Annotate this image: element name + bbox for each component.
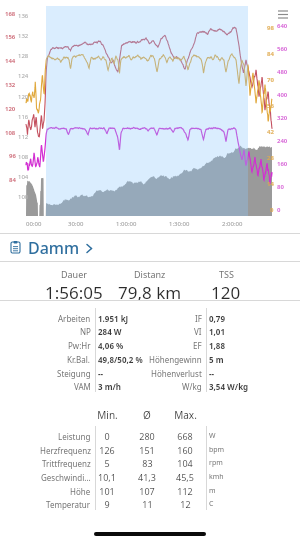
staticText: VAM <box>74 381 91 392</box>
staticText: 1:30:00 <box>169 220 190 228</box>
staticText: Steigung <box>57 368 91 379</box>
staticText: Max. <box>174 408 197 422</box>
staticText: 120 <box>5 105 16 113</box>
button[interactable]: Damm <box>0 234 300 261</box>
staticText: W/kg <box>182 381 202 392</box>
staticText: 42 <box>267 128 274 136</box>
staticText: 104 <box>177 457 193 469</box>
staticText: 108 <box>18 153 29 161</box>
staticText: 84 <box>9 176 16 184</box>
staticText: 79,8 km <box>118 281 182 300</box>
staticText: kmh <box>209 472 224 482</box>
staticText: 101 <box>99 485 115 497</box>
staticText: 49,8/50,2 % <box>98 354 143 365</box>
staticText: 41,3 <box>138 471 156 483</box>
staticText: 1:00:00 <box>116 220 137 228</box>
staticText: Geschwindi... <box>41 472 91 483</box>
staticText: 11 <box>142 498 153 510</box>
staticText: 14 <box>267 180 274 188</box>
staticText: 120 <box>211 281 241 300</box>
staticText: 132 <box>5 81 16 89</box>
staticText: NP <box>80 326 91 337</box>
button[interactable]: TSS <box>182 262 270 300</box>
staticText: Dauer <box>61 268 87 280</box>
staticText: 160 <box>277 160 288 168</box>
staticText: Pw:Hr <box>68 340 91 351</box>
staticText: Min. <box>97 408 118 422</box>
staticText: 120 <box>18 93 29 101</box>
staticText: 320 <box>277 114 288 122</box>
staticText: 560 <box>277 45 288 53</box>
staticText: 0,79 <box>209 313 226 324</box>
staticText: Herzfrequenz <box>40 445 91 456</box>
staticText: 1:56:05 <box>45 281 103 300</box>
staticText: 108 <box>5 129 16 137</box>
staticText: 1.951 kJ <box>98 313 129 324</box>
staticText: 3 m/h <box>98 381 121 392</box>
staticText: Trittfrequenz <box>42 458 91 469</box>
staticText: 284 W <box>98 326 122 337</box>
staticText: 4,06 % <box>98 340 124 351</box>
staticText: 112 <box>177 485 193 497</box>
staticText: 3,54 W/kg <box>209 381 249 392</box>
staticText: 668 <box>177 430 193 442</box>
staticText: 136 <box>18 12 29 20</box>
staticText: 2:00:00 <box>222 220 243 228</box>
staticText: 156 <box>5 33 16 41</box>
staticText: 0 <box>277 206 281 214</box>
staticText: 9 <box>104 498 110 510</box>
staticText: 160 <box>177 444 193 456</box>
staticText: 126 <box>99 444 115 456</box>
staticText: 124 <box>18 72 29 80</box>
staticText: Temperatur <box>46 499 91 510</box>
staticText: Höhengewinn <box>149 354 202 365</box>
staticText: bpm <box>209 445 225 455</box>
staticText: Leistung <box>58 431 91 442</box>
staticText: 132 <box>18 32 29 40</box>
staticText: 80 <box>277 183 284 191</box>
staticText: 100 <box>18 193 29 201</box>
staticText: 480 <box>277 68 288 76</box>
staticText: 640 <box>277 22 288 30</box>
staticText: 45,5 <box>176 471 194 483</box>
staticText: 56 <box>267 102 274 110</box>
staticText: 128 <box>18 52 29 60</box>
staticText: m <box>209 486 216 496</box>
staticText: 0 <box>270 206 274 214</box>
staticText: 10,1 <box>98 471 116 483</box>
staticText: Damm <box>28 237 80 259</box>
staticText: Arbeiten <box>58 313 91 324</box>
staticText: 98 <box>267 24 274 32</box>
staticText: 1,01 <box>209 326 226 337</box>
button[interactable]: Distanz <box>106 262 194 300</box>
staticText: W <box>209 431 216 441</box>
staticText: VI <box>194 326 202 337</box>
staticText: 83 <box>142 457 153 469</box>
button[interactable]: Dauer <box>30 262 118 300</box>
staticText: 00:00 <box>26 220 42 228</box>
staticText: 116 <box>18 113 29 121</box>
staticText: 107 <box>139 485 155 497</box>
staticText: 28 <box>267 154 274 162</box>
staticText: 400 <box>277 91 288 99</box>
staticText: -- <box>98 368 104 379</box>
staticText: 112 <box>18 133 29 141</box>
staticText: Höhenverlust <box>151 368 202 379</box>
staticText: 84 <box>267 50 274 58</box>
staticText: rpm <box>209 458 223 468</box>
staticText: Kr.Bal. <box>67 354 91 365</box>
staticText: 70 <box>267 76 274 84</box>
staticText: 151 <box>139 444 155 456</box>
staticText: 168 <box>5 10 16 18</box>
staticText: IF <box>195 313 202 324</box>
staticText: Höhe <box>70 486 91 497</box>
staticText: 5 <box>104 457 110 469</box>
staticText: 5 m <box>209 354 224 365</box>
staticText: 280 <box>139 430 155 442</box>
staticText: C <box>209 499 214 509</box>
staticText: 30:00 <box>68 220 84 228</box>
staticText: TSS <box>219 268 234 280</box>
staticText: -- <box>209 368 215 379</box>
staticText: 104 <box>18 173 29 181</box>
button[interactable]: Menu <box>275 6 291 22</box>
